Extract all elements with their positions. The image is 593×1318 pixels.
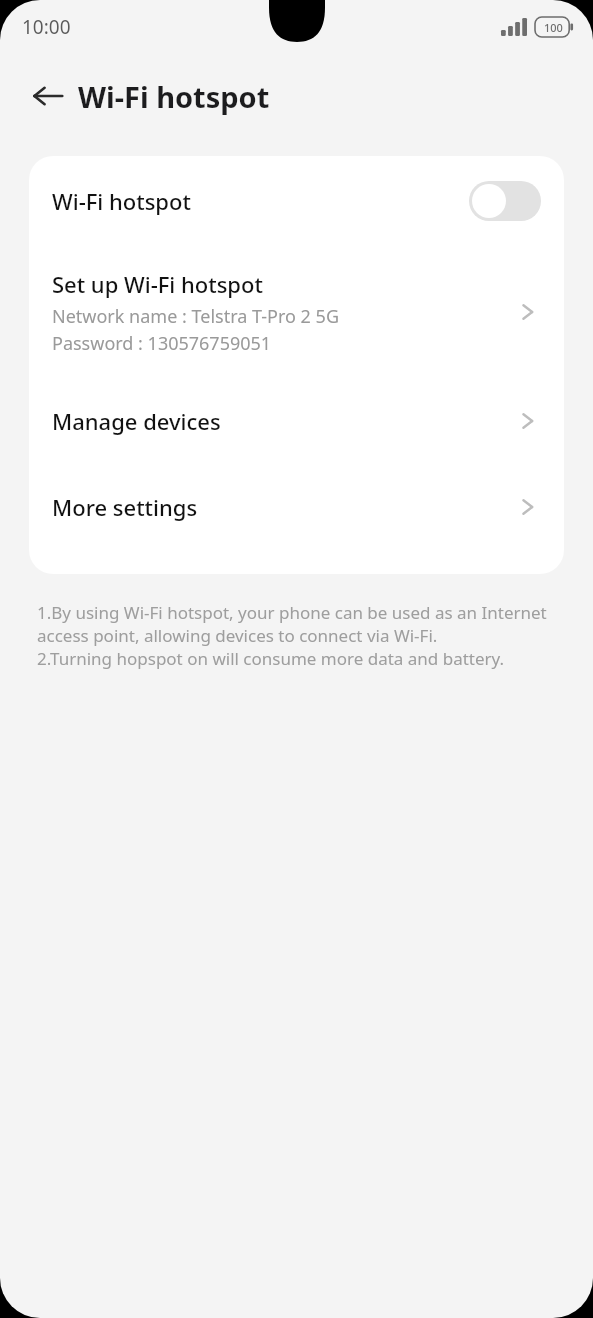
button[interactable]: Wi-Fi hotspot toggle [469, 181, 541, 221]
staticText: 1.By using Wi-Fi hotspot, your phone can… [37, 601, 556, 647]
staticText: Wi-Fi hotspot [52, 186, 469, 216]
button[interactable]: Wi-Fi hotspot [29, 156, 564, 246]
button[interactable]: Back [26, 74, 70, 118]
button[interactable]: More settings [29, 464, 564, 550]
staticText: Wi-Fi hotspot [78, 77, 270, 116]
staticText: 100 [544, 20, 563, 35]
staticText: 10:00 [22, 14, 71, 40]
staticText: 2.Turning hopspot on will consume more d… [37, 647, 505, 670]
staticText: More settings [52, 492, 515, 522]
button[interactable]: Set up Wi-Fi hotspot [29, 246, 564, 378]
staticText: Password : 130576759051 [52, 331, 272, 356]
staticText: Network name : Telstra T-Pro 2 5G [52, 304, 339, 329]
staticText: Manage devices [52, 406, 515, 436]
staticText: Set up Wi-Fi hotspot [52, 269, 263, 299]
button[interactable]: Manage devices [29, 378, 564, 464]
